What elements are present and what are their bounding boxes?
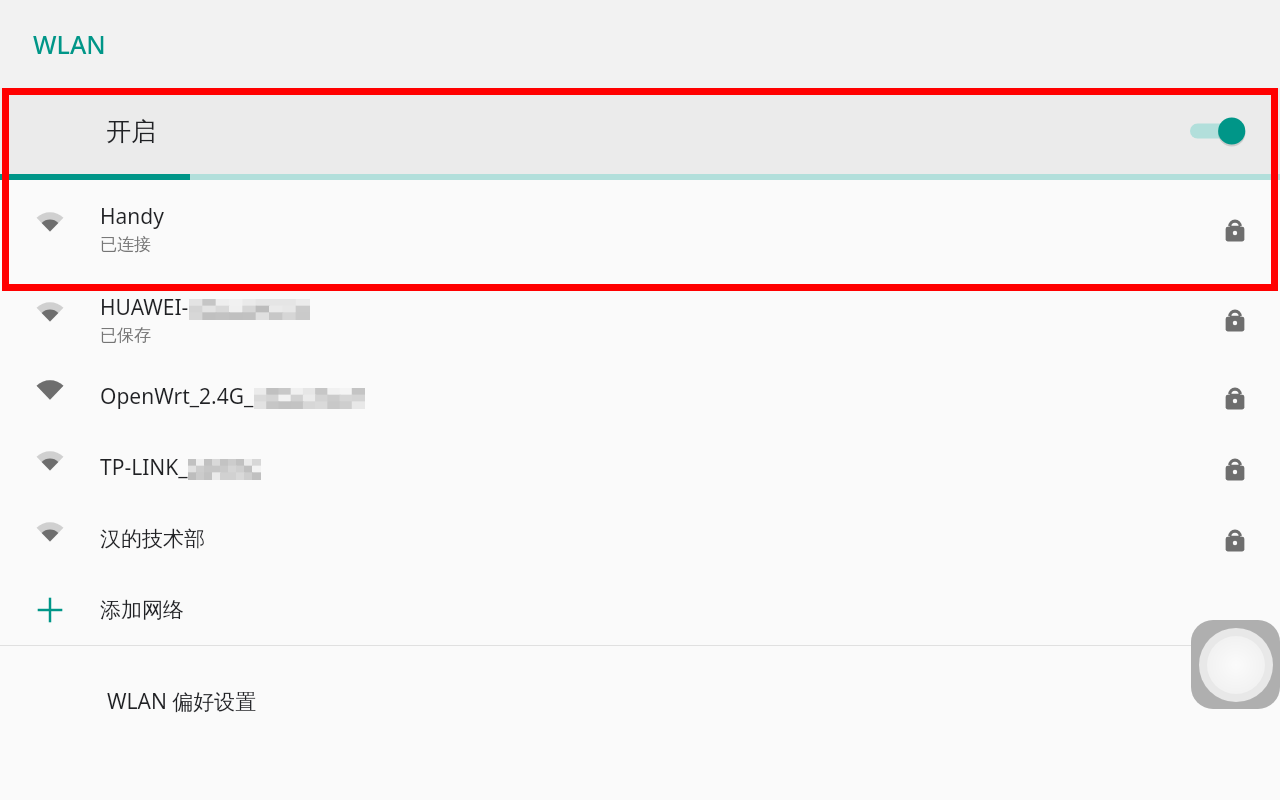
button[interactable]: Handy bbox=[0, 180, 1280, 277]
staticText: HUAWEI- bbox=[100, 293, 189, 322]
staticText: TP-LINK_ bbox=[100, 453, 188, 482]
button[interactable]: WLAN 偏好设置 bbox=[0, 646, 1280, 756]
staticText: OpenWrt_2.4G_ bbox=[100, 382, 254, 411]
button[interactable]: TP-LINK_ bbox=[0, 432, 1280, 503]
button[interactable]: WLAN toggle bbox=[1190, 114, 1246, 148]
staticText: 已保存 bbox=[100, 325, 151, 346]
staticText: 已连接 bbox=[100, 234, 151, 255]
staticText: WLAN bbox=[33, 27, 106, 61]
button[interactable]: OpenWrt_2.4G_ bbox=[0, 361, 1280, 432]
staticText: 添加网络 bbox=[100, 597, 184, 623]
button[interactable]: 开启 bbox=[0, 88, 1280, 174]
button[interactable]: 添加网络 bbox=[0, 574, 1280, 645]
staticText: 汉的技术部 bbox=[100, 526, 205, 552]
button[interactable]: Floating assistant bbox=[1191, 620, 1280, 709]
staticText: 开启 bbox=[106, 116, 156, 147]
staticText: Handy bbox=[100, 202, 164, 231]
staticText: WLAN 偏好设置 bbox=[107, 687, 257, 716]
button[interactable]: 汉的技术部 bbox=[0, 503, 1280, 574]
button[interactable]: HUAWEI- bbox=[0, 277, 1280, 361]
